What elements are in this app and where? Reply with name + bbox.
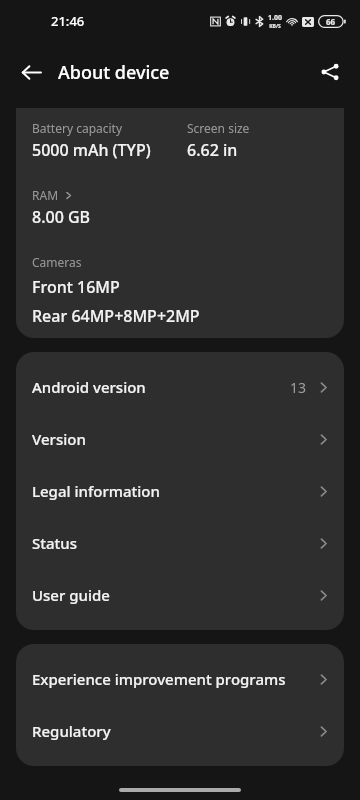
staticText: 6.62 in (187, 139, 238, 161)
button[interactable]: Status (16, 517, 344, 569)
staticText: 21:46 (51, 12, 85, 30)
staticText: Battery capacity (32, 120, 123, 136)
staticText: Cameras (32, 254, 82, 270)
staticText: Legal information (32, 481, 160, 501)
button[interactable]: Share (308, 50, 352, 94)
staticText: 8.00 GB (32, 206, 91, 228)
staticText: About device (58, 60, 170, 85)
staticText: 66 (326, 16, 336, 27)
staticText: 5000 mAh (TYP) (32, 139, 151, 161)
staticText: Front 16MP (32, 276, 120, 298)
button[interactable]: RAM (32, 187, 73, 203)
button[interactable]: Back (9, 50, 53, 94)
staticText: KB/S (269, 23, 281, 30)
button[interactable]: Legal information (16, 465, 344, 517)
staticText: User guide (32, 585, 110, 605)
button[interactable]: Regulatory (16, 705, 344, 757)
staticText: Regulatory (32, 721, 111, 741)
button[interactable]: Version (16, 413, 344, 465)
staticText: 1.00 (268, 13, 282, 23)
staticText: Experience improvement programs (32, 669, 286, 689)
staticText: Status (32, 533, 78, 553)
button[interactable]: Android version (16, 361, 344, 413)
button[interactable]: Experience improvement programs (16, 653, 344, 705)
staticText: Version (32, 429, 86, 449)
staticText: Screen size (187, 120, 250, 136)
staticText: Android version (32, 377, 146, 397)
staticText: Rear 64MP+8MP+2MP (32, 305, 200, 327)
staticText: RAM (32, 187, 59, 203)
button[interactable]: User guide (16, 569, 344, 621)
staticText: 13 (290, 378, 307, 397)
